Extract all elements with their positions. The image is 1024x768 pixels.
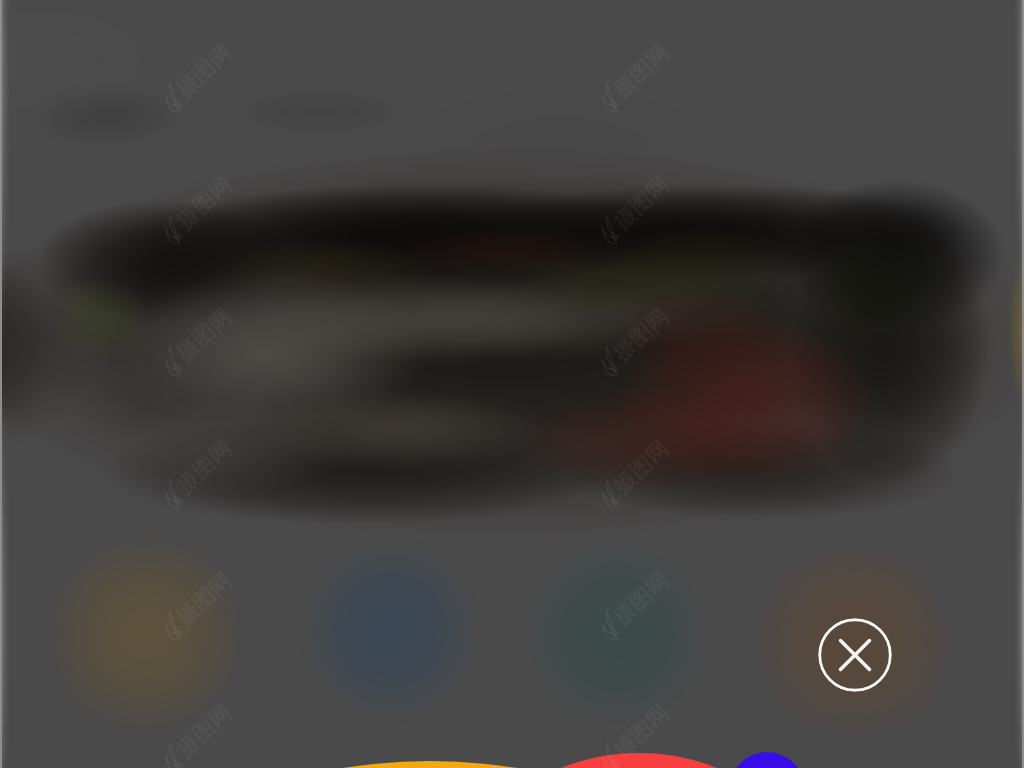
button[interactable]: Close: [818, 618, 892, 692]
